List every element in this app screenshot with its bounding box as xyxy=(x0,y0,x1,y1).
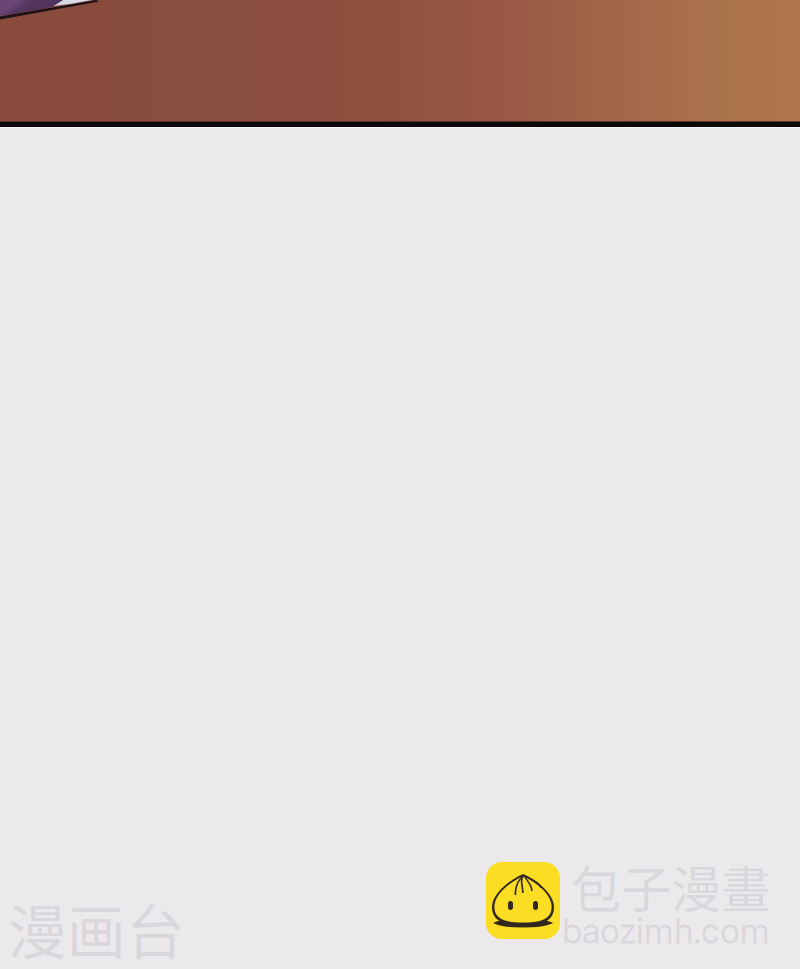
staticText: 漫画台 xyxy=(8,886,185,969)
button[interactable]: baozimh.com xyxy=(486,862,560,939)
staticText: baozimh.com xyxy=(562,910,770,952)
staticText: 包子漫畫 xyxy=(571,850,771,922)
